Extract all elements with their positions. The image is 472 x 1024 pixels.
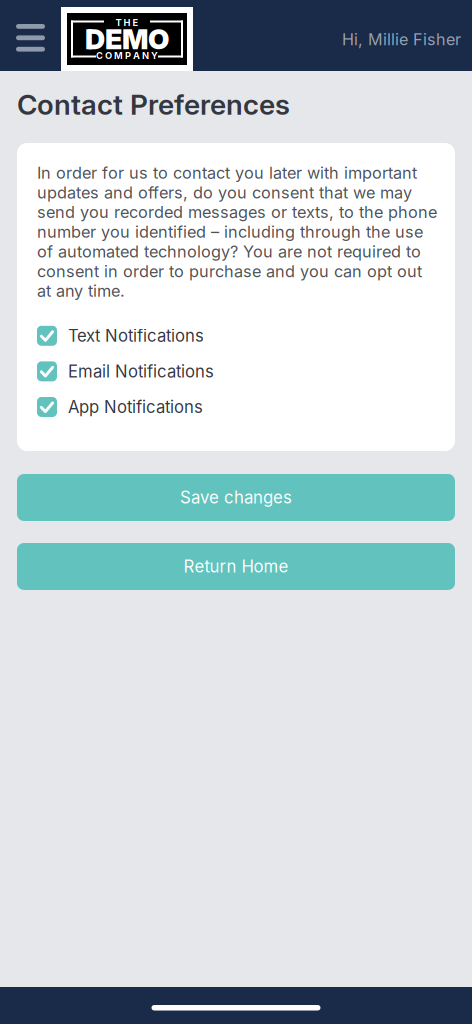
button[interactable]: Text Notifications <box>37 326 437 346</box>
staticText: In order for us to contact you later wit… <box>37 163 437 301</box>
staticText: Save changes <box>180 487 292 508</box>
staticText: Hi, Millie Fisher <box>342 29 461 49</box>
staticText: Contact Preferences <box>17 88 290 121</box>
staticText: Email Notifications <box>68 361 214 381</box>
staticText: T H E <box>115 17 138 28</box>
staticText: C O M P A N Y <box>96 50 158 61</box>
staticText: Text Notifications <box>68 326 204 346</box>
button[interactable]: Return Home <box>17 543 455 590</box>
button[interactable]: Save changes <box>17 474 455 521</box>
button[interactable]: Email Notifications <box>37 361 437 381</box>
staticText: DEMO <box>85 22 169 56</box>
staticText: App Notifications <box>68 397 203 417</box>
button[interactable]: Menu <box>0 0 61 71</box>
staticText: Return Home <box>183 556 288 577</box>
button[interactable]: App Notifications <box>37 397 437 417</box>
